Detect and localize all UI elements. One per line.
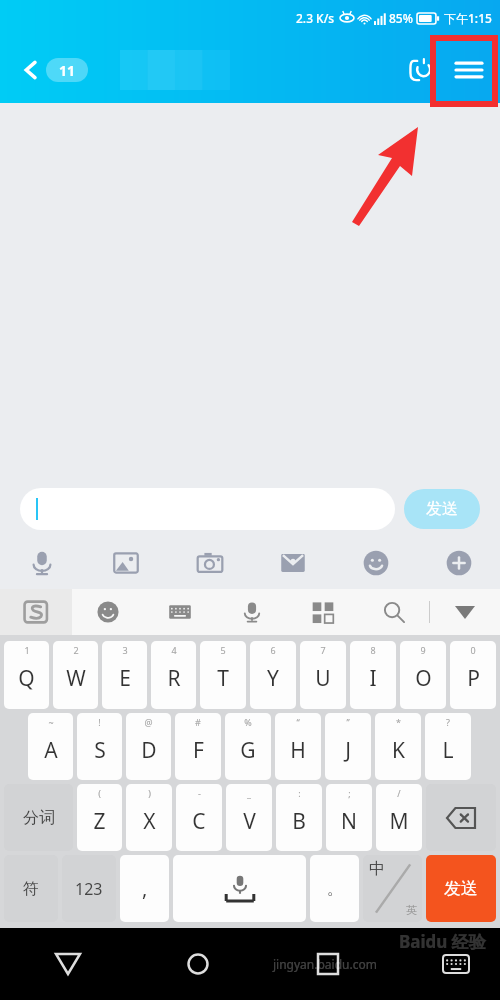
staticText: 2 bbox=[73, 644, 79, 656]
staticText: O bbox=[415, 664, 432, 693]
staticText: @ bbox=[144, 716, 153, 728]
button[interactable]: Emoji bbox=[72, 589, 144, 635]
staticText: 1 bbox=[24, 644, 30, 656]
button[interactable]: More bbox=[417, 537, 500, 589]
staticText: - bbox=[198, 787, 201, 799]
button[interactable]: Search bbox=[358, 589, 429, 635]
button[interactable]: ? bbox=[425, 713, 471, 780]
staticText: I bbox=[369, 664, 377, 693]
staticText: 发送 bbox=[426, 499, 458, 519]
button[interactable]: 8 bbox=[350, 641, 396, 709]
staticText: B bbox=[292, 807, 306, 836]
button[interactable]: Keyboard layout bbox=[144, 589, 216, 635]
button[interactable]: Voice input bbox=[216, 589, 287, 635]
button[interactable]: Sogou input bbox=[0, 589, 72, 635]
staticText: R bbox=[167, 664, 181, 693]
button[interactable]: 9 bbox=[400, 641, 446, 709]
button[interactable]: * bbox=[375, 713, 421, 780]
button[interactable]: Space bbox=[173, 855, 306, 922]
button[interactable]: 0 bbox=[450, 641, 496, 709]
button[interactable] bbox=[20, 488, 395, 530]
staticText: 85% bbox=[389, 10, 413, 26]
staticText: 0 bbox=[470, 644, 476, 656]
button[interactable]: 4 bbox=[151, 641, 196, 709]
staticText: P bbox=[467, 664, 480, 693]
button[interactable]: @ bbox=[126, 713, 171, 780]
button[interactable]: 7 bbox=[300, 641, 346, 709]
button[interactable]: Voice bbox=[0, 537, 84, 589]
button[interactable]: Camera bbox=[168, 537, 251, 589]
button[interactable]: Backspace bbox=[426, 784, 496, 851]
button[interactable]: # bbox=[175, 713, 221, 780]
button[interactable]: ) bbox=[126, 784, 172, 851]
staticText: Q bbox=[18, 664, 35, 693]
staticText: 5 bbox=[220, 644, 226, 656]
staticText: % bbox=[244, 716, 252, 728]
button[interactable]: - bbox=[176, 784, 222, 851]
button[interactable]: 6 bbox=[250, 641, 296, 709]
button[interactable]: Apps bbox=[287, 589, 358, 635]
staticText: 中 bbox=[369, 859, 385, 879]
staticText: 2.3 K/s bbox=[296, 10, 335, 26]
staticText: 。 bbox=[327, 879, 343, 899]
staticText: Z bbox=[93, 807, 106, 836]
staticText: T bbox=[217, 664, 229, 693]
staticText: ; bbox=[348, 787, 351, 799]
button[interactable]: ; bbox=[326, 784, 372, 851]
staticText: H bbox=[290, 736, 306, 765]
button[interactable]: Hide keyboard bbox=[430, 589, 500, 635]
button[interactable]: 1 bbox=[4, 641, 49, 709]
staticText: J bbox=[345, 736, 351, 765]
staticText: 6 bbox=[270, 644, 276, 656]
staticText: F bbox=[193, 736, 204, 765]
button[interactable]: 符 bbox=[4, 855, 58, 922]
staticText: ( bbox=[98, 787, 101, 799]
button[interactable]: ( bbox=[77, 784, 122, 851]
button[interactable]: Voice call bbox=[398, 47, 444, 93]
button[interactable]: ~ bbox=[28, 713, 73, 780]
staticText: “ bbox=[296, 716, 300, 728]
button[interactable]: ! bbox=[77, 713, 122, 780]
button[interactable]: Chinese English toggle bbox=[363, 855, 422, 922]
staticText: Baidu 经验 bbox=[399, 930, 486, 953]
staticText: V bbox=[243, 807, 256, 836]
button[interactable]: Photos bbox=[84, 537, 168, 589]
button[interactable]: 123 bbox=[62, 855, 116, 922]
button[interactable]: Envelope bbox=[251, 537, 334, 589]
button[interactable]: : bbox=[276, 784, 322, 851]
button[interactable]: Back, 11 unread bbox=[18, 54, 92, 86]
staticText: ! bbox=[98, 716, 101, 728]
button[interactable]: ” bbox=[325, 713, 371, 780]
button[interactable]: Emoji bbox=[334, 537, 417, 589]
button[interactable]: / bbox=[376, 784, 422, 851]
staticText: N bbox=[341, 807, 357, 836]
button[interactable]: 。 bbox=[310, 855, 359, 922]
button[interactable]: Home bbox=[170, 936, 226, 992]
button[interactable]: 分词 bbox=[4, 784, 73, 851]
staticText: * bbox=[396, 716, 401, 728]
staticText: U bbox=[315, 664, 331, 693]
button[interactable]: 5 bbox=[200, 641, 246, 709]
staticText: M bbox=[389, 807, 409, 836]
staticText: ~ bbox=[48, 716, 54, 728]
staticText: 分词 bbox=[23, 808, 55, 828]
button[interactable]: % bbox=[225, 713, 271, 780]
staticText: 3 bbox=[122, 644, 128, 656]
staticText: G bbox=[240, 736, 256, 765]
staticText: X bbox=[143, 807, 156, 836]
button[interactable]: Switch keyboard bbox=[430, 938, 482, 990]
button[interactable]: “ bbox=[275, 713, 321, 780]
button[interactable]: 发送 bbox=[404, 489, 480, 529]
staticText: 8 bbox=[370, 644, 376, 656]
button[interactable]: , bbox=[120, 855, 169, 922]
button[interactable]: 2 bbox=[53, 641, 98, 709]
staticText: E bbox=[119, 664, 131, 693]
button[interactable]: Recent apps bbox=[300, 936, 356, 992]
staticText: 下午1:15 bbox=[444, 10, 492, 26]
button[interactable]: Menu bbox=[444, 45, 494, 95]
button[interactable]: Back bbox=[40, 936, 96, 992]
staticText: _ bbox=[247, 787, 251, 799]
button[interactable]: 3 bbox=[102, 641, 147, 709]
button[interactable]: _ bbox=[226, 784, 272, 851]
button[interactable]: 发送 bbox=[426, 855, 496, 922]
